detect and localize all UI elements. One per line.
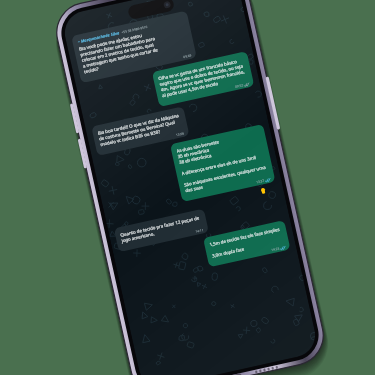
button[interactable]: WhatsApp conversation on phone [0, 0, 375, 375]
